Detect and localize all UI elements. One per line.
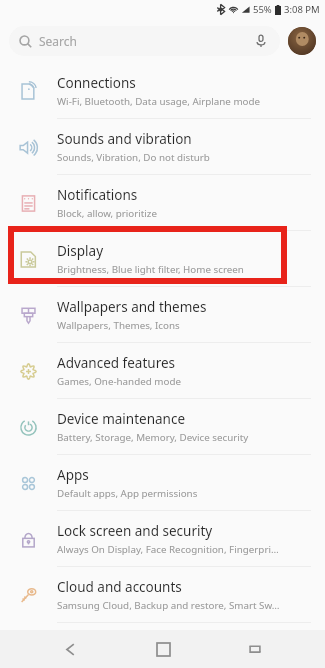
staticText: Display (57, 242, 104, 260)
staticText: Sounds and vibration (57, 130, 192, 148)
staticText: Wallpapers, Themes, Icons (57, 319, 180, 332)
button[interactable]: Profile (288, 27, 316, 55)
staticText: Default apps, App permissions (57, 487, 198, 500)
staticText: Apps (57, 466, 89, 484)
staticText: 3:08 PM (284, 3, 320, 16)
staticText: 55% (253, 3, 272, 16)
button[interactable]: Advanced features (0, 343, 325, 398)
button[interactable]: Display (0, 231, 325, 286)
button[interactable]: Home (141, 630, 185, 668)
staticText: Brightness, Blue light filter, Home scre… (57, 263, 244, 276)
staticText: Notifications (57, 186, 138, 204)
staticText: Samsung Cloud, Backup and restore, Smart… (57, 599, 280, 612)
staticText: Sounds, Vibration, Do not disturb (57, 151, 210, 164)
button[interactable]: Lock screen and security (0, 511, 325, 566)
staticText: Lock screen and security (57, 522, 213, 540)
button[interactable]: Sounds and vibration (0, 119, 325, 174)
staticText: Search (39, 33, 77, 49)
staticText: Battery, Storage, Memory, Device securit… (57, 431, 249, 444)
button[interactable]: Cloud and accounts (0, 567, 325, 622)
button[interactable]: Recents (233, 630, 277, 668)
button[interactable]: Connections (0, 63, 325, 118)
button[interactable]: Wallpapers and themes (0, 287, 325, 342)
staticText: Wallpapers and themes (57, 298, 207, 316)
staticText: Always On Display, Face Recognition, Fin… (57, 543, 279, 556)
button[interactable]: Notifications (0, 175, 325, 230)
button[interactable]: Device maintenance (0, 399, 325, 454)
button[interactable]: Search (9, 26, 280, 56)
staticText: Connections (57, 74, 136, 92)
staticText: Block, allow, prioritize (57, 207, 157, 220)
staticText: Games, One-handed mode (57, 375, 181, 388)
button[interactable]: Apps (0, 455, 325, 510)
staticText: Device maintenance (57, 410, 186, 428)
staticText: Advanced features (57, 354, 176, 372)
button[interactable]: Voice search (252, 32, 270, 50)
staticText: Wi-Fi, Bluetooth, Data usage, Airplane m… (57, 95, 261, 108)
staticText: Cloud and accounts (57, 578, 182, 596)
button[interactable]: Back (48, 630, 92, 668)
